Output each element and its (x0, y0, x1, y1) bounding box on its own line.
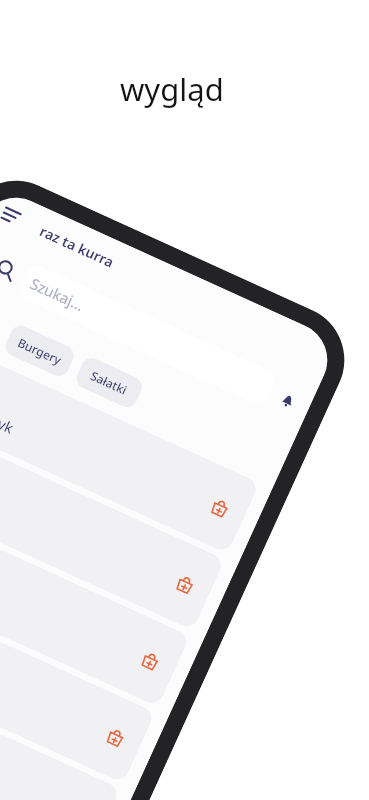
button[interactable]: Add to cart (204, 492, 236, 523)
staticText: raz ta kurra (37, 221, 118, 272)
button[interactable]: Burgery (2, 322, 77, 379)
button[interactable]: 26,90 zł (0, 568, 156, 783)
staticText: Szukaj... (27, 273, 87, 315)
button[interactable]: 29,90 zł (0, 721, 86, 800)
button[interactable]: Add to cart (100, 721, 131, 753)
button[interactable]: Szukaj... (16, 262, 278, 408)
staticText: Wrap Klasyk (0, 384, 17, 438)
button[interactable]: Add to cart (134, 645, 166, 676)
button[interactable]: Add to cart (169, 568, 201, 600)
button[interactable]: Notifications (270, 383, 305, 417)
button[interactable]: Menu (0, 197, 29, 233)
staticText: Burgery (15, 334, 65, 368)
button[interactable]: Sałatki (73, 355, 145, 411)
staticText: Sałatki (88, 367, 130, 398)
button[interactable]: 24,90 zł (0, 492, 190, 707)
button[interactable]: 23,90 zł (0, 415, 225, 630)
button[interactable]: 25,90 zł (0, 339, 260, 554)
staticText: wygląd (120, 68, 224, 110)
button[interactable]: 28,90 zł (0, 645, 121, 800)
